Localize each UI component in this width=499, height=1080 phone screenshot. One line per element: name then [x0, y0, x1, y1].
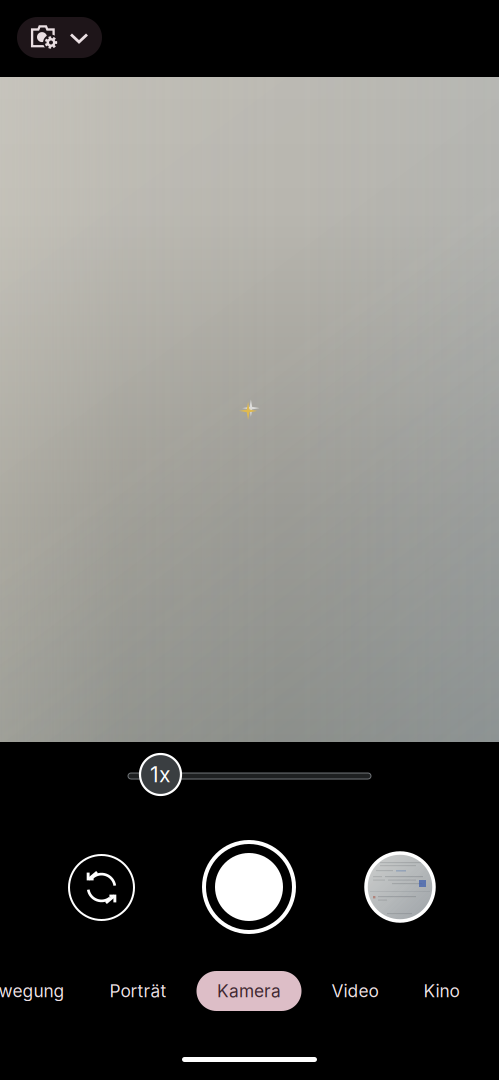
- button[interactable]: Bewegung: [0, 971, 79, 1011]
- button[interactable]: Zoom 1x: [140, 754, 181, 795]
- button[interactable]: Kino: [408, 971, 474, 1011]
- button[interactable]: Last photo: [366, 853, 434, 921]
- button[interactable]: Kamera: [196, 971, 301, 1011]
- staticText: Kino: [423, 981, 459, 1001]
- button[interactable]: Take photo: [204, 842, 294, 932]
- button[interactable]: Porträt: [94, 971, 181, 1011]
- button[interactable]: Video: [316, 971, 393, 1011]
- staticText: Porträt: [109, 981, 166, 1001]
- button[interactable]: Camera settings: [17, 17, 102, 58]
- staticText: Bewegung: [0, 981, 64, 1001]
- button[interactable]: Switch camera: [69, 855, 134, 920]
- staticText: Video: [331, 981, 378, 1001]
- staticText: 1x: [150, 762, 171, 787]
- staticText: Kamera: [217, 981, 281, 1001]
